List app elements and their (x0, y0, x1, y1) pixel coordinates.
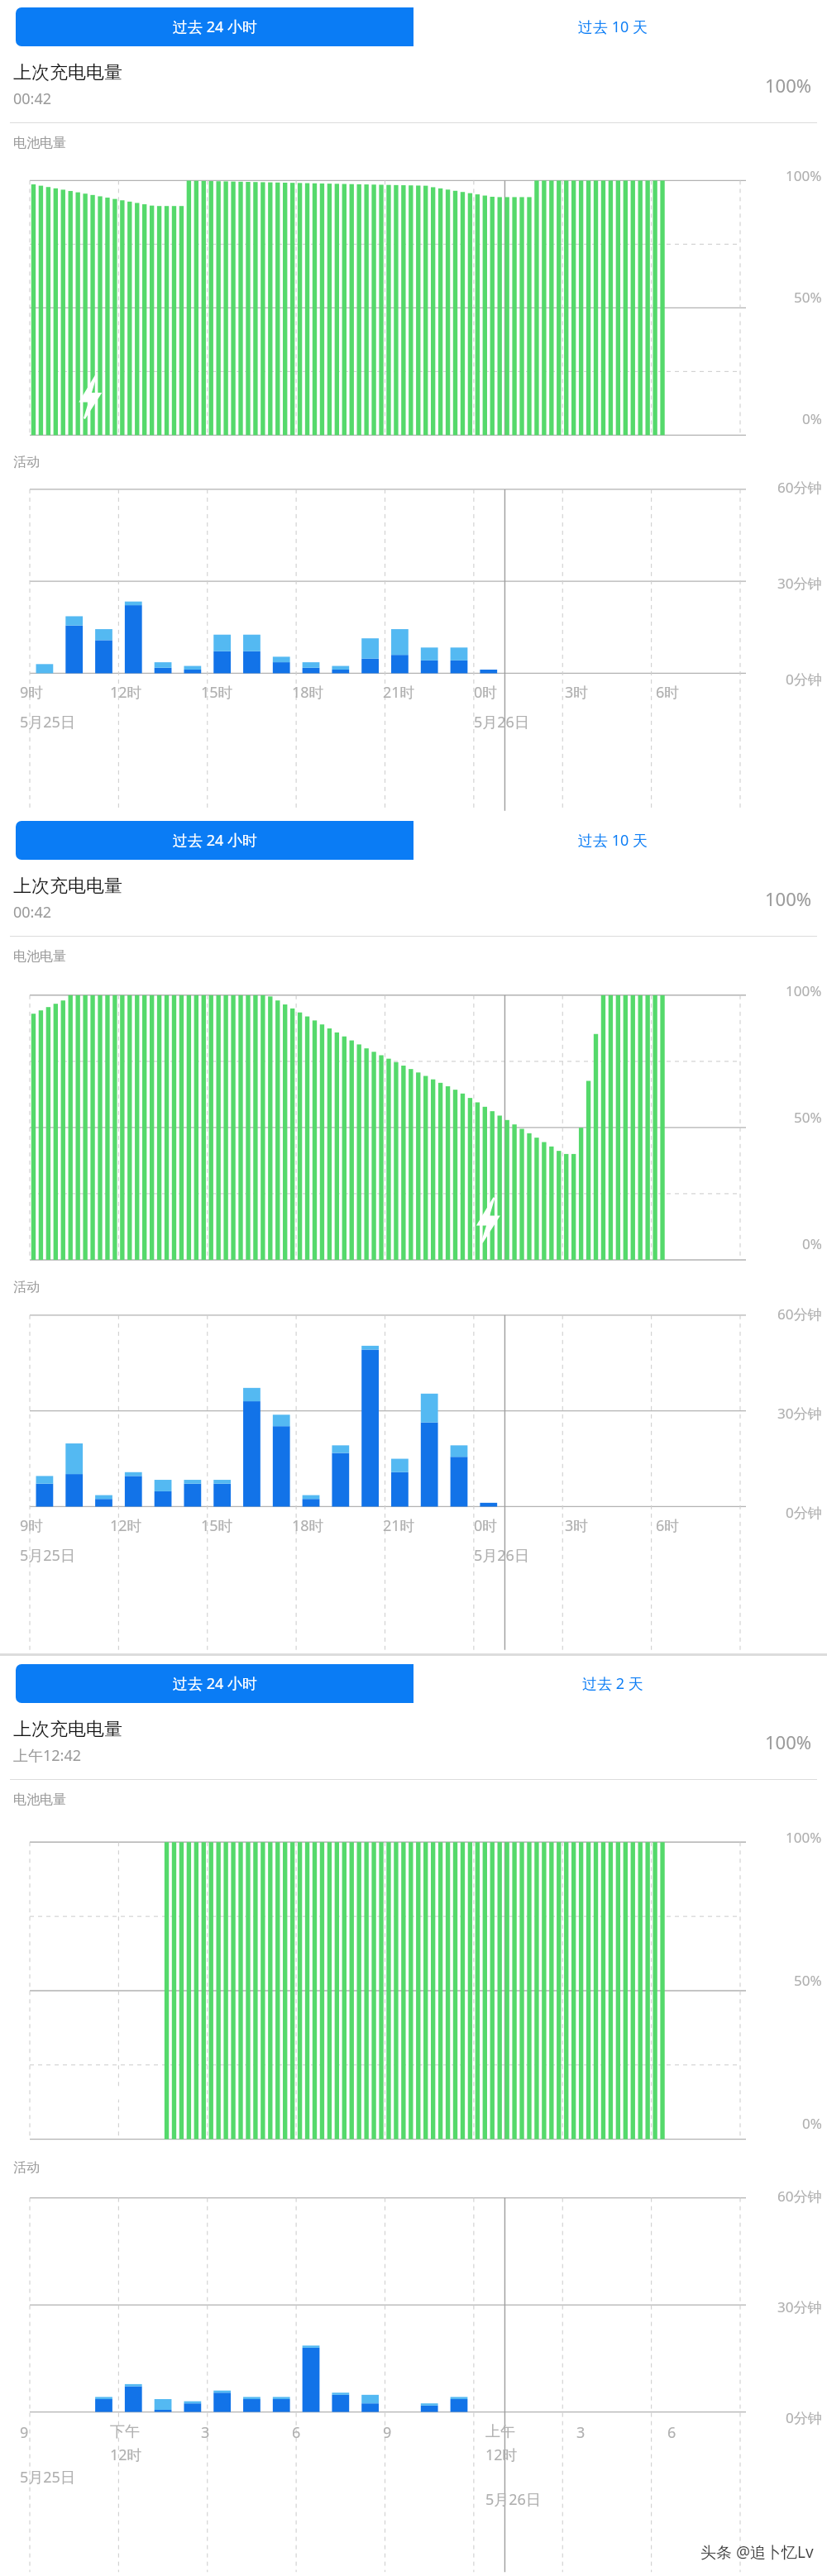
staticText: 电池电量 (13, 1791, 66, 1808)
staticText: 00:42 (13, 88, 52, 109)
staticText: 过去 10 天 (578, 17, 648, 37)
staticText: 18时 (292, 1515, 324, 1536)
staticText: 50% (794, 1971, 822, 1990)
staticText: 100% (786, 166, 822, 185)
staticText: 6 (667, 2422, 676, 2443)
staticText: 100% (765, 886, 812, 911)
button[interactable]: 过去 24 小时 (16, 7, 413, 46)
staticText: 6时 (656, 682, 680, 703)
staticText: 9 (20, 2422, 29, 2443)
staticText: 3 (576, 2422, 586, 2443)
staticText: 5月26日 (474, 1545, 529, 1566)
staticText: 21时 (383, 1515, 415, 1536)
staticText: 6时 (656, 1515, 680, 1536)
staticText: 6 (292, 2422, 301, 2443)
staticText: 0时 (474, 1515, 498, 1536)
staticText: 0时 (474, 682, 498, 703)
staticText: 过去 24 小时 (173, 17, 257, 37)
staticText: 60分钟 (777, 1305, 822, 1324)
staticText: 18时 (292, 682, 324, 703)
staticText: 9时 (20, 682, 44, 703)
staticText: 12时 (110, 1515, 142, 1536)
staticText: 30分钟 (777, 1404, 822, 1423)
button[interactable]: 过去 2 天 (413, 1664, 811, 1703)
staticText: 50% (794, 288, 822, 307)
staticText: 15时 (201, 1515, 233, 1536)
button[interactable]: 过去 24 小时 (16, 821, 413, 860)
staticText: 活动 (13, 1279, 40, 1295)
staticText: 12时 (110, 682, 142, 703)
staticText: 50% (794, 1108, 822, 1127)
staticText: 9时 (20, 1515, 44, 1536)
staticText: 0分钟 (786, 1503, 822, 1522)
staticText: 0分钟 (786, 2408, 822, 2427)
staticText: 100% (786, 981, 822, 1000)
staticText: 活动 (13, 454, 40, 470)
staticText: 电池电量 (13, 948, 66, 965)
staticText: 3时 (565, 1515, 589, 1536)
staticText: 9 (383, 2422, 392, 2443)
staticText: 过去 2 天 (582, 1673, 643, 1694)
staticText: 电池电量 (13, 135, 66, 151)
staticText: 0% (802, 409, 822, 428)
staticText: 上午 (485, 2422, 515, 2441)
staticText: 00:42 (13, 902, 52, 923)
staticText: 100% (786, 1828, 822, 1847)
staticText: 100% (765, 1729, 812, 1754)
staticText: 5月26日 (474, 712, 529, 732)
button[interactable]: 过去 10 天 (413, 821, 811, 860)
staticText: 60分钟 (777, 2187, 822, 2206)
staticText: 12时 (110, 2445, 142, 2465)
staticText: 3时 (565, 682, 589, 703)
staticText: 30分钟 (777, 2297, 822, 2316)
staticText: 30分钟 (777, 574, 822, 593)
staticText: 15时 (201, 682, 233, 703)
staticText: 活动 (13, 2159, 40, 2176)
button[interactable]: 过去 24 小时 (16, 1664, 413, 1703)
staticText: 上次充电电量 (13, 1718, 122, 1741)
staticText: 12时 (485, 2445, 518, 2465)
button[interactable]: 过去 10 天 (413, 7, 811, 46)
staticText: 5月25日 (20, 1545, 75, 1566)
staticText: 5月25日 (20, 712, 75, 732)
staticText: 头条 @追卜忆Lv (700, 2541, 814, 2563)
staticText: 上次充电电量 (13, 875, 122, 898)
staticText: 上午12:42 (13, 1745, 82, 1766)
staticText: 5月25日 (20, 2467, 75, 2488)
staticText: 过去 10 天 (578, 830, 648, 851)
staticText: 100% (765, 73, 812, 98)
staticText: 60分钟 (777, 478, 822, 497)
staticText: 0% (802, 2114, 822, 2133)
staticText: 过去 24 小时 (173, 1673, 257, 1694)
staticText: 21时 (383, 682, 415, 703)
staticText: 5月26日 (485, 2489, 541, 2510)
staticText: 下午 (110, 2422, 140, 2441)
staticText: 0% (802, 1234, 822, 1253)
staticText: 3 (201, 2422, 210, 2443)
staticText: 过去 24 小时 (173, 830, 257, 851)
staticText: 上次充电电量 (13, 61, 122, 84)
staticText: 0分钟 (786, 670, 822, 689)
